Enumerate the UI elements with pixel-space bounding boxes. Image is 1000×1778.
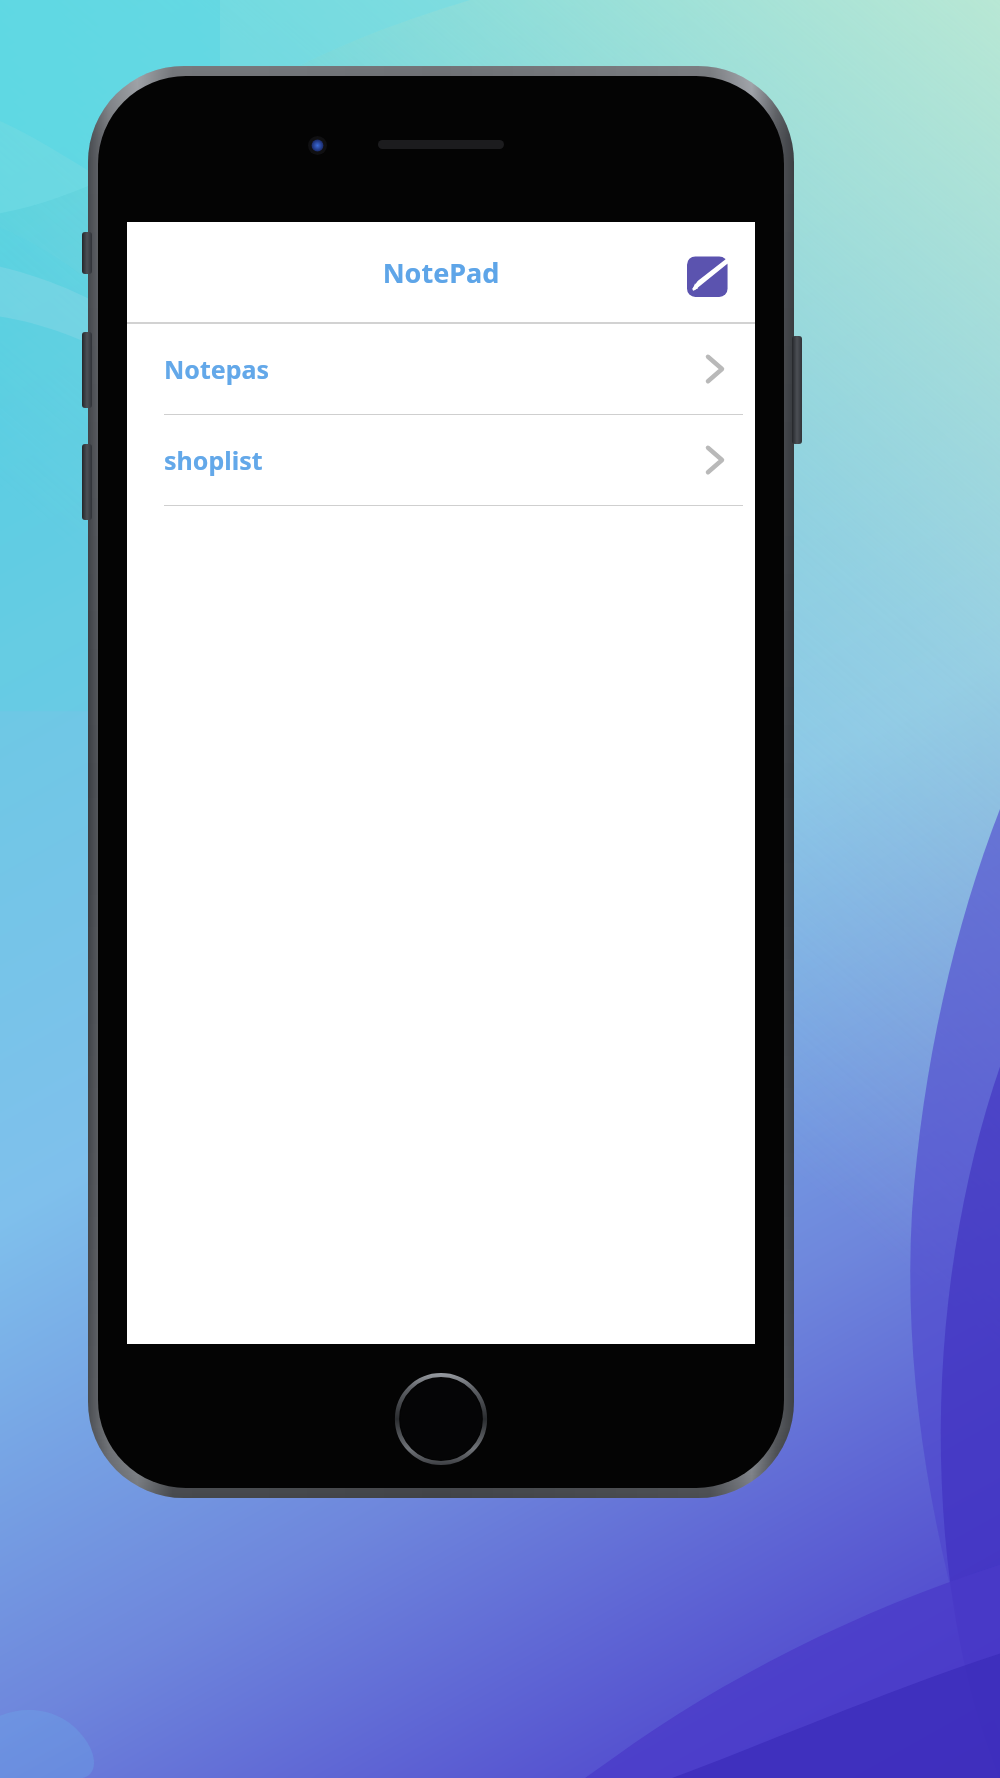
staticText: Notepas — [164, 352, 704, 386]
staticText: NotePad — [127, 254, 755, 291]
button[interactable]: New note — [685, 244, 741, 300]
staticText: shoplist — [164, 443, 704, 477]
button[interactable]: Notepas — [127, 324, 755, 415]
button[interactable]: shoplist — [127, 415, 755, 506]
